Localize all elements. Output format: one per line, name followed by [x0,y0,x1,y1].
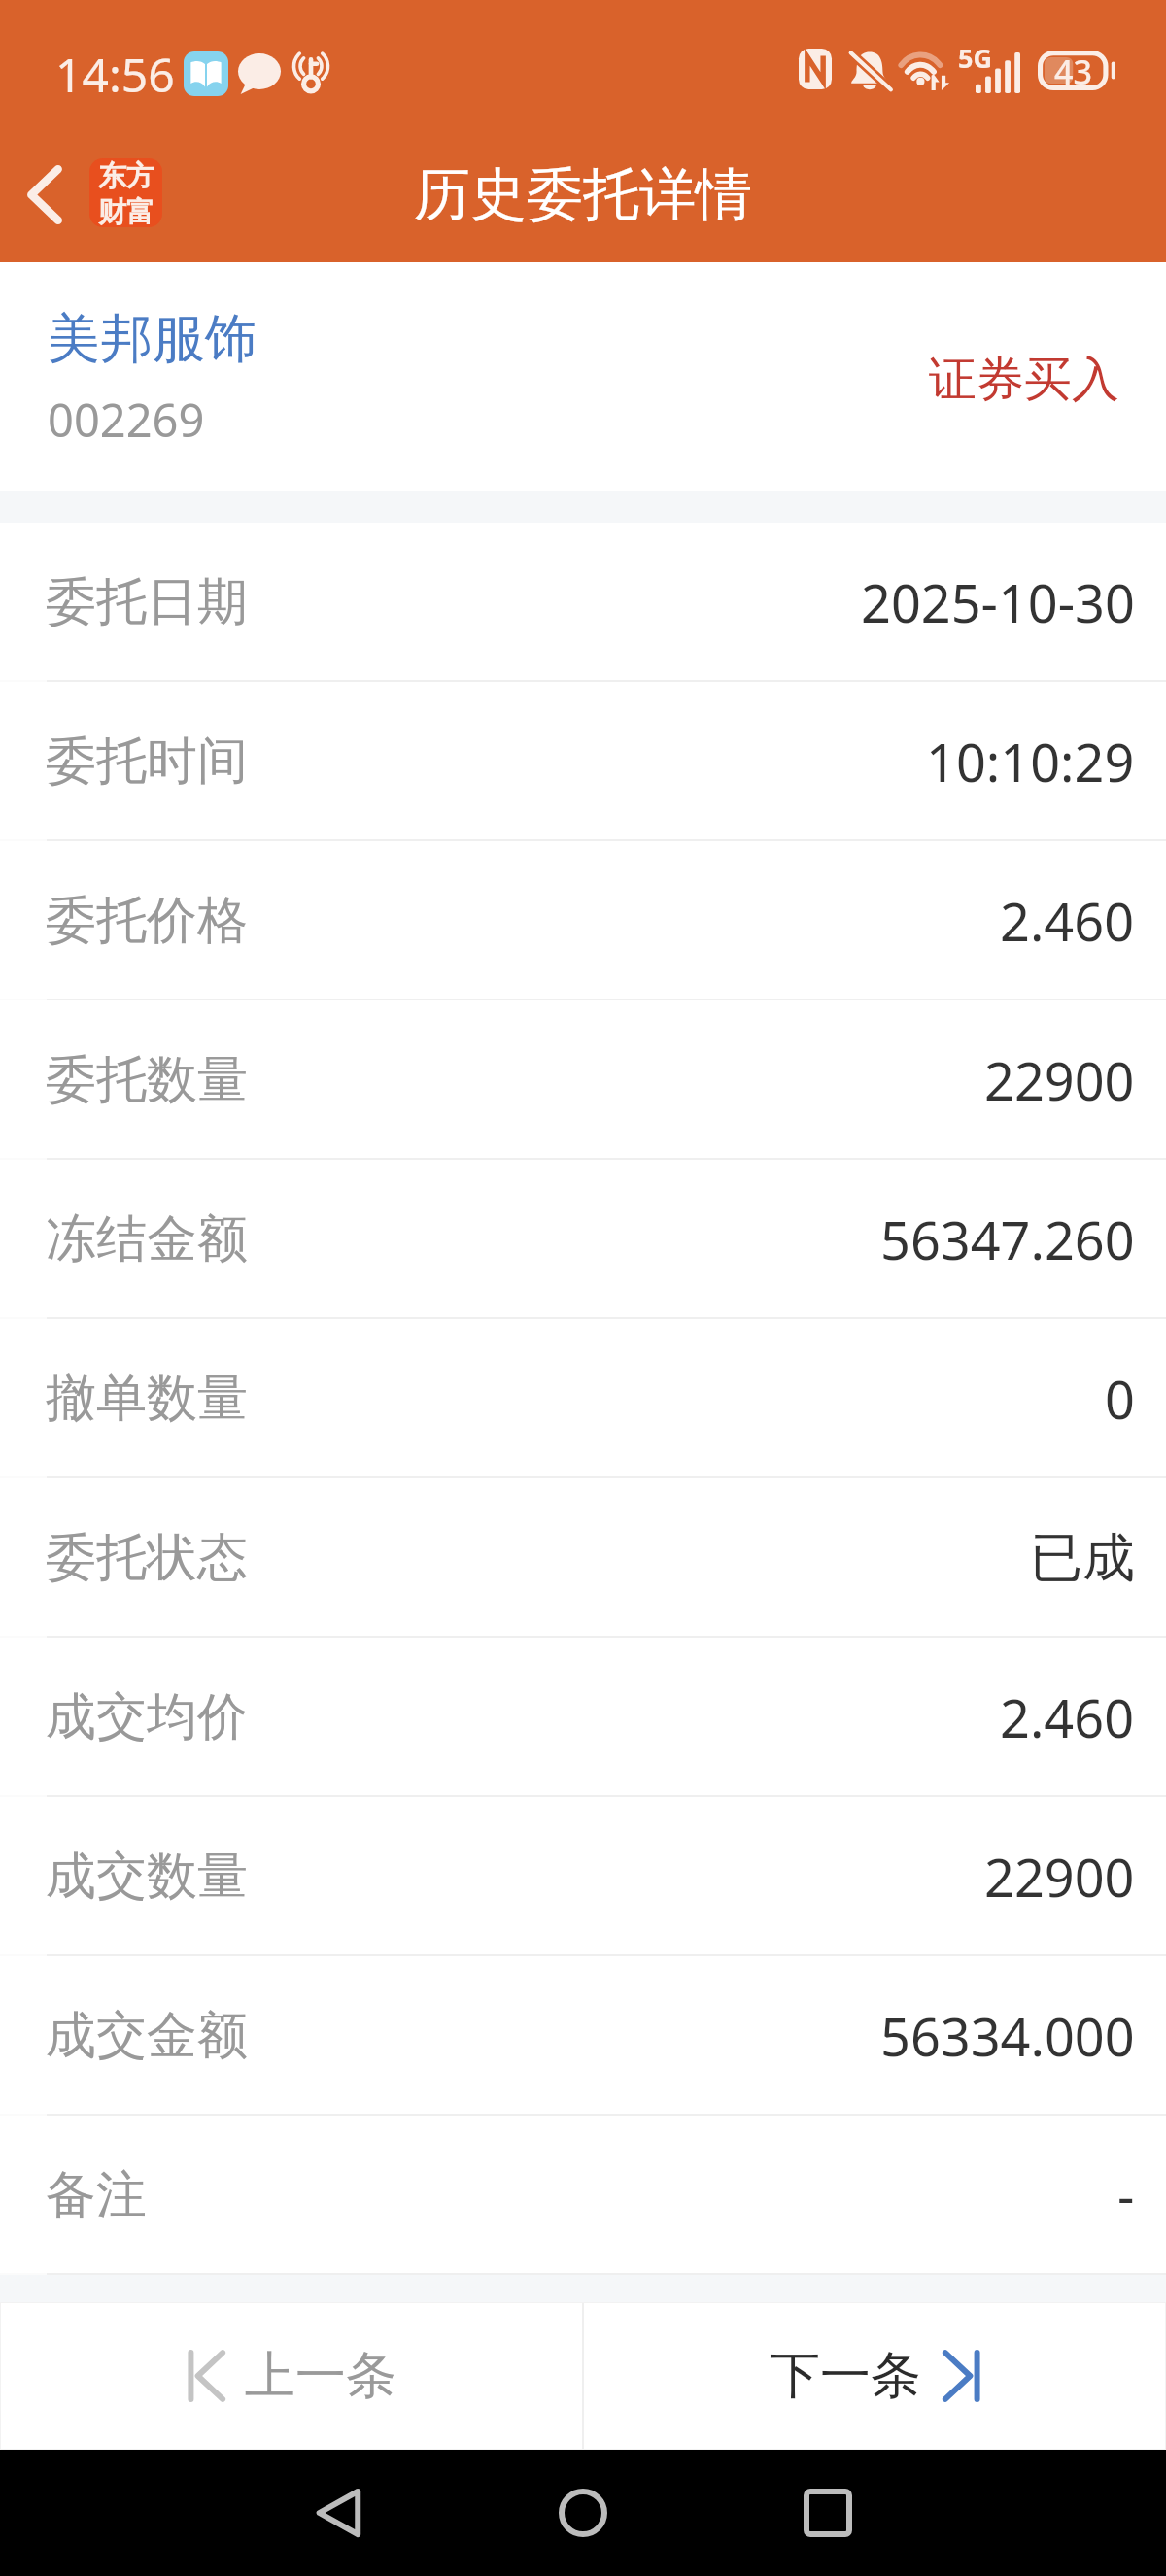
staticText: 证券买入 [929,350,1119,410]
button[interactable]: 委托日期 [0,523,1166,682]
staticText: 东方 [98,158,154,194]
staticText: 0 [1105,1363,1135,1435]
button[interactable]: Home [520,2450,646,2576]
staticText: 56347.260 [880,1203,1135,1275]
staticText: 委托时间 [46,729,248,794]
staticText: 备注 [46,2163,147,2227]
staticText: 历史委托详情 [414,159,752,230]
staticText: 22900 [984,1044,1135,1116]
staticText: 22900 [984,1841,1135,1913]
staticText: 委托价格 [46,889,248,953]
button[interactable]: 上一条 [1,2303,582,2449]
button[interactable]: 下一条 [584,2303,1165,2449]
button[interactable]: 委托价格 [0,841,1166,1000]
staticText: 美邦服饰 [48,306,257,372]
button[interactable]: Recents [765,2450,891,2576]
staticText: 撤单数量 [46,1367,248,1431]
staticText: 委托状态 [46,1526,248,1590]
button[interactable]: 成交数量 [0,1797,1166,1956]
staticText: 下一条 [770,2344,921,2408]
button[interactable]: 冻结金额 [0,1160,1166,1319]
staticText: 上一条 [245,2344,396,2408]
staticText: 002269 [48,389,205,451]
button[interactable]: 委托状态 [0,1478,1166,1638]
staticText: 43 [1054,50,1092,89]
staticText: 2.460 [1000,1681,1135,1753]
button[interactable]: 备注 [0,2116,1166,2275]
button[interactable]: Back [275,2450,401,2576]
staticText: 56334.000 [880,2000,1135,2072]
staticText: - [1117,2159,1135,2231]
staticText: 5G [958,40,992,76]
staticText: 委托数量 [46,1048,248,1112]
button[interactable]: 委托数量 [0,1000,1166,1160]
staticText: 2025-10-30 [861,566,1135,638]
button[interactable]: 成交金额 [0,1956,1166,2116]
staticText: 10:10:29 [926,726,1135,797]
button[interactable]: 成交均价 [0,1638,1166,1797]
staticText: 财富 [98,194,154,227]
button[interactable]: 委托时间 [0,682,1166,841]
staticText: 成交金额 [46,2004,248,2068]
staticText: 委托日期 [46,570,248,634]
staticText: 14:56 [55,43,175,106]
staticText: 成交数量 [46,1845,248,1909]
button[interactable]: Back [0,126,89,262]
button[interactable]: 撤单数量 [0,1319,1166,1478]
staticText: 成交均价 [46,1685,248,1749]
staticText: 2.460 [1000,885,1135,957]
staticText: 已成 [1030,1525,1135,1591]
button[interactable]: East Money logo [89,158,162,227]
staticText: 冻结金额 [46,1207,248,1271]
